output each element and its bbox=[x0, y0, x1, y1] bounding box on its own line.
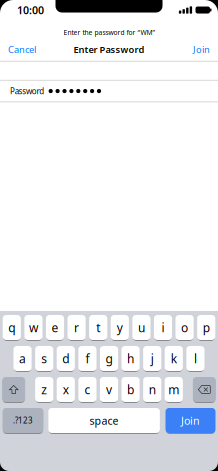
staticText: d bbox=[62, 350, 69, 366]
staticText: s bbox=[41, 350, 47, 366]
button[interactable]: x bbox=[57, 377, 75, 402]
button[interactable]: t bbox=[89, 315, 107, 340]
staticText: b bbox=[127, 381, 134, 397]
button[interactable]: y bbox=[111, 315, 129, 340]
staticText: o bbox=[181, 319, 188, 335]
staticText: g bbox=[105, 350, 112, 366]
staticText: Join bbox=[193, 43, 210, 56]
button[interactable]: Shift bbox=[2, 377, 25, 402]
staticText: y bbox=[117, 319, 123, 335]
staticText: Cancel bbox=[8, 43, 36, 56]
staticText: n bbox=[149, 381, 156, 397]
button[interactable]: e bbox=[46, 315, 64, 340]
button[interactable]: .?123 bbox=[2, 408, 43, 433]
staticText: q bbox=[8, 319, 15, 335]
staticText: Password bbox=[10, 86, 44, 96]
staticText: space bbox=[90, 413, 119, 428]
staticText: .?123 bbox=[13, 415, 33, 426]
staticText: x bbox=[63, 381, 69, 397]
button[interactable]: l bbox=[186, 346, 204, 371]
button[interactable]: r bbox=[67, 315, 86, 340]
button[interactable]: a bbox=[13, 346, 32, 371]
staticText: f bbox=[85, 350, 89, 366]
staticText: m bbox=[168, 381, 179, 397]
button[interactable]: p bbox=[197, 315, 215, 340]
staticText: Enter Password bbox=[73, 43, 144, 56]
staticText: r bbox=[74, 319, 79, 335]
button[interactable]: z bbox=[35, 377, 53, 402]
button[interactable]: Join bbox=[165, 408, 215, 433]
staticText: u bbox=[138, 319, 145, 335]
button[interactable]: d bbox=[57, 346, 75, 371]
staticText: w bbox=[29, 319, 38, 335]
button[interactable]: m bbox=[165, 377, 183, 402]
button[interactable]: o bbox=[175, 315, 194, 340]
button[interactable]: n bbox=[143, 377, 161, 402]
button[interactable]: Cancel bbox=[8, 43, 36, 56]
staticText: j bbox=[151, 350, 154, 366]
button[interactable]: j bbox=[143, 346, 161, 371]
button[interactable]: Join bbox=[193, 43, 210, 56]
button[interactable]: i bbox=[154, 315, 172, 340]
staticText: e bbox=[51, 319, 58, 335]
button[interactable]: k bbox=[165, 346, 183, 371]
button[interactable]: s bbox=[35, 346, 53, 371]
staticText: Enter the password for “WM” bbox=[63, 28, 154, 37]
button[interactable]: f bbox=[78, 346, 96, 371]
staticText: v bbox=[106, 381, 112, 397]
staticText: c bbox=[84, 381, 90, 397]
staticText: h bbox=[127, 350, 134, 366]
button[interactable]: u bbox=[132, 315, 150, 340]
staticText: Join bbox=[181, 413, 200, 428]
button[interactable]: q bbox=[3, 315, 21, 340]
button[interactable]: v bbox=[100, 377, 118, 402]
staticText: p bbox=[203, 319, 210, 335]
staticText: l bbox=[194, 350, 197, 366]
button[interactable]: Delete bbox=[193, 377, 216, 402]
button[interactable]: g bbox=[100, 346, 118, 371]
button[interactable]: space bbox=[48, 408, 160, 433]
staticText: t bbox=[96, 319, 100, 335]
button[interactable]: c bbox=[78, 377, 96, 402]
button[interactable]: w bbox=[24, 315, 42, 340]
button[interactable]: h bbox=[121, 346, 140, 371]
staticText: i bbox=[161, 319, 164, 335]
staticText: a bbox=[19, 350, 26, 366]
staticText: 10:00 bbox=[17, 3, 44, 17]
staticText: k bbox=[171, 350, 177, 366]
button[interactable]: b bbox=[121, 377, 140, 402]
staticText: z bbox=[41, 381, 47, 397]
